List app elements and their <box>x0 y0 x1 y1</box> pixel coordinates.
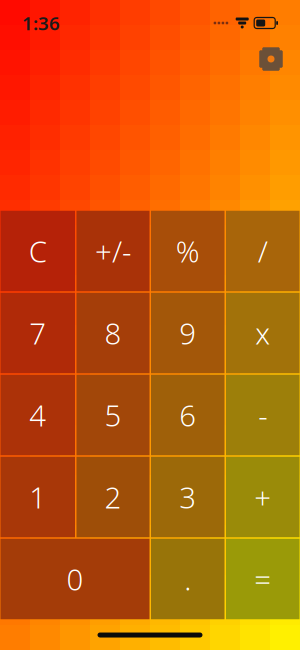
button[interactable]: 5 <box>76 375 149 455</box>
button[interactable]: / <box>226 211 299 291</box>
staticText: 1:36 <box>22 11 60 35</box>
button[interactable]: C <box>0 211 75 291</box>
button[interactable]: 8 <box>76 293 149 373</box>
staticText: / <box>258 231 268 270</box>
button[interactable]: 7 <box>0 293 75 373</box>
button[interactable]: + <box>226 457 299 537</box>
staticText: 1 <box>29 477 46 516</box>
staticText: 8 <box>104 313 121 352</box>
button[interactable]: 6 <box>151 375 224 455</box>
button[interactable]: = <box>226 539 299 619</box>
staticText: + <box>254 477 271 516</box>
staticText: 3 <box>179 477 196 516</box>
button[interactable]: 2 <box>76 457 149 537</box>
button[interactable]: +/- <box>76 211 149 291</box>
staticText: . <box>184 559 191 598</box>
button[interactable]: 1 <box>0 457 75 537</box>
staticText: 5 <box>104 395 121 434</box>
staticText: = <box>254 559 271 598</box>
staticText: - <box>258 395 267 434</box>
staticText: 0 <box>66 559 83 598</box>
staticText: 2 <box>104 477 121 516</box>
staticText: C <box>29 231 47 270</box>
staticText: 6 <box>179 395 196 434</box>
button[interactable]: 4 <box>0 375 75 455</box>
button[interactable]: - <box>226 375 299 455</box>
button[interactable]: . <box>151 539 224 619</box>
button[interactable]: % <box>151 211 224 291</box>
staticText: x <box>255 313 270 352</box>
button[interactable]: 0 <box>0 539 149 619</box>
staticText: +/- <box>95 231 131 270</box>
staticText: 7 <box>29 313 46 352</box>
staticText: 4 <box>29 395 46 434</box>
button[interactable]: x <box>226 293 299 373</box>
staticText: % <box>176 231 200 270</box>
button[interactable]: Settings <box>254 42 288 76</box>
staticText: 9 <box>179 313 196 352</box>
button[interactable]: 3 <box>151 457 224 537</box>
button[interactable]: 9 <box>151 293 224 373</box>
